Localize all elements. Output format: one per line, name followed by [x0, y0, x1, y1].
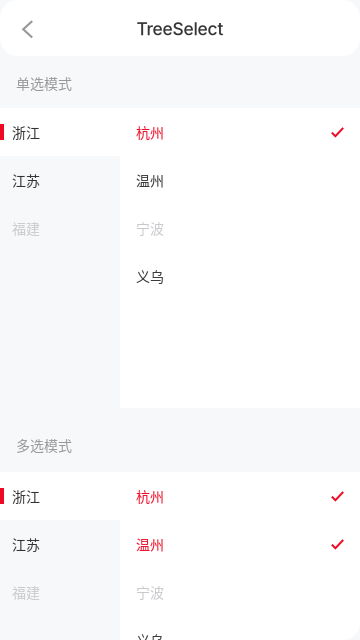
- button[interactable]: 杭州: [120, 472, 360, 520]
- staticText: 温州: [136, 170, 164, 190]
- button[interactable]: 宁波: [120, 568, 360, 616]
- button[interactable]: 义乌: [120, 252, 360, 300]
- staticText: 杭州: [136, 486, 164, 506]
- staticText: 义乌: [136, 266, 164, 286]
- button[interactable]: 福建: [0, 568, 120, 616]
- staticText: 杭州: [136, 122, 164, 142]
- staticText: TreeSelect: [136, 18, 223, 39]
- staticText: 福建: [12, 218, 40, 238]
- button[interactable]: 杭州: [120, 108, 360, 156]
- button[interactable]: 宁波: [120, 204, 360, 252]
- staticText: 浙江: [12, 122, 40, 142]
- staticText: 江苏: [12, 534, 40, 554]
- button[interactable]: 温州: [120, 156, 360, 204]
- staticText: 宁波: [136, 218, 164, 238]
- staticText: 宁波: [136, 582, 164, 602]
- button[interactable]: 江苏: [0, 520, 120, 568]
- button[interactable]: 浙江: [0, 108, 120, 156]
- button[interactable]: 温州: [120, 520, 360, 568]
- button[interactable]: 浙江: [0, 472, 120, 520]
- staticText: 多选模式: [16, 435, 72, 455]
- button[interactable]: 福建: [0, 204, 120, 252]
- button[interactable]: Back: [0, 6, 47, 50]
- staticText: 浙江: [12, 486, 40, 506]
- staticText: 义乌: [136, 630, 164, 640]
- staticText: 江苏: [12, 170, 40, 190]
- staticText: 福建: [12, 582, 40, 602]
- staticText: 温州: [136, 534, 164, 554]
- button[interactable]: 江苏: [0, 156, 120, 204]
- button[interactable]: 义乌: [120, 616, 360, 640]
- staticText: 单选模式: [16, 73, 72, 93]
